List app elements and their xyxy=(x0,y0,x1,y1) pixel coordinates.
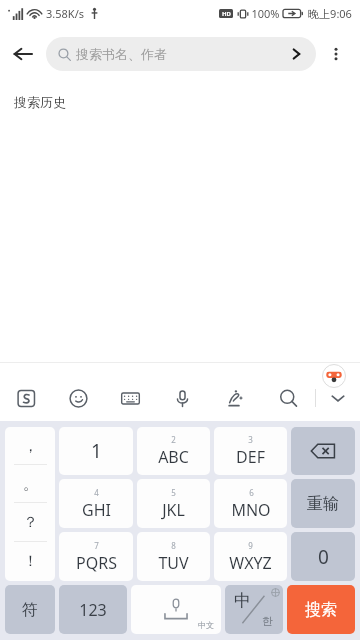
button[interactable]: 搜索书名、作者 xyxy=(46,37,316,71)
button[interactable]: Assistant xyxy=(322,364,346,388)
staticText: 1 xyxy=(91,438,102,464)
button[interactable]: More options xyxy=(316,34,356,74)
button[interactable]: 4 xyxy=(59,479,133,528)
staticText: HD xyxy=(222,10,231,18)
staticText: WXYZ xyxy=(229,552,272,574)
button[interactable]: Back xyxy=(0,31,46,77)
button[interactable]: 搜索 xyxy=(287,585,355,634)
staticText: 4 xyxy=(94,487,99,498)
button[interactable]: Language xyxy=(225,585,283,634)
staticText: 0 xyxy=(318,544,329,570)
button[interactable]: 3 xyxy=(214,427,287,475)
button[interactable]: 7 xyxy=(59,532,133,581)
staticText: 晚上9:06 xyxy=(308,6,352,21)
button[interactable]: 0 xyxy=(291,532,355,581)
staticText: 符 xyxy=(22,600,38,620)
staticText: 9 xyxy=(248,540,253,551)
staticText: ABC xyxy=(158,446,189,468)
staticText: TUV xyxy=(158,552,189,574)
staticText: 123 xyxy=(79,599,107,621)
staticText: 中 xyxy=(234,590,251,611)
staticText: 中文 xyxy=(198,620,214,630)
button[interactable]: 5 xyxy=(137,479,210,528)
button[interactable]: 符 xyxy=(5,585,55,634)
staticText: 。 xyxy=(23,475,38,494)
button[interactable]: search xyxy=(262,381,315,415)
staticText: ！ xyxy=(23,552,38,571)
staticText: 6 xyxy=(249,487,254,498)
staticText: DEF xyxy=(236,446,265,468)
staticText: JKL xyxy=(162,499,185,521)
staticText: ， xyxy=(23,437,38,456)
staticText: 5 xyxy=(171,487,176,498)
button[interactable]: mic xyxy=(156,381,209,415)
staticText: 3 xyxy=(248,434,253,445)
staticText: GHI xyxy=(82,499,111,521)
staticText: 한 xyxy=(262,614,273,628)
button[interactable]: Hide keyboard xyxy=(316,381,360,415)
staticText: 搜索书名、作者 xyxy=(76,46,167,62)
button[interactable]: Backspace xyxy=(291,427,355,475)
staticText: MNO xyxy=(231,499,271,521)
button[interactable]: pen xyxy=(209,381,262,415)
button[interactable]: smile xyxy=(52,381,104,415)
staticText: 搜索 xyxy=(305,600,337,620)
staticText: 7 xyxy=(94,540,99,551)
button[interactable]: 8 xyxy=(137,532,210,581)
button[interactable]: logo xyxy=(0,381,52,415)
staticText: 8 xyxy=(171,540,176,551)
staticText: 100% xyxy=(251,6,280,21)
button[interactable]: 1 xyxy=(59,427,133,475)
button[interactable]: kbd xyxy=(104,381,156,415)
button[interactable]: 6 xyxy=(214,479,287,528)
button[interactable]: 123 xyxy=(59,585,127,634)
staticText: PQRS xyxy=(76,552,117,574)
button[interactable]: 2 xyxy=(137,427,210,475)
staticText: 2 xyxy=(171,434,176,445)
button[interactable]: Space xyxy=(131,585,221,634)
staticText: 搜索历史 xyxy=(14,94,66,110)
button[interactable]: 重输 xyxy=(291,479,355,528)
staticText: 3.58K/s xyxy=(46,6,84,21)
staticText: ？ xyxy=(23,513,38,532)
staticText: 重输 xyxy=(307,494,339,514)
button[interactable]: 9 xyxy=(214,532,287,581)
